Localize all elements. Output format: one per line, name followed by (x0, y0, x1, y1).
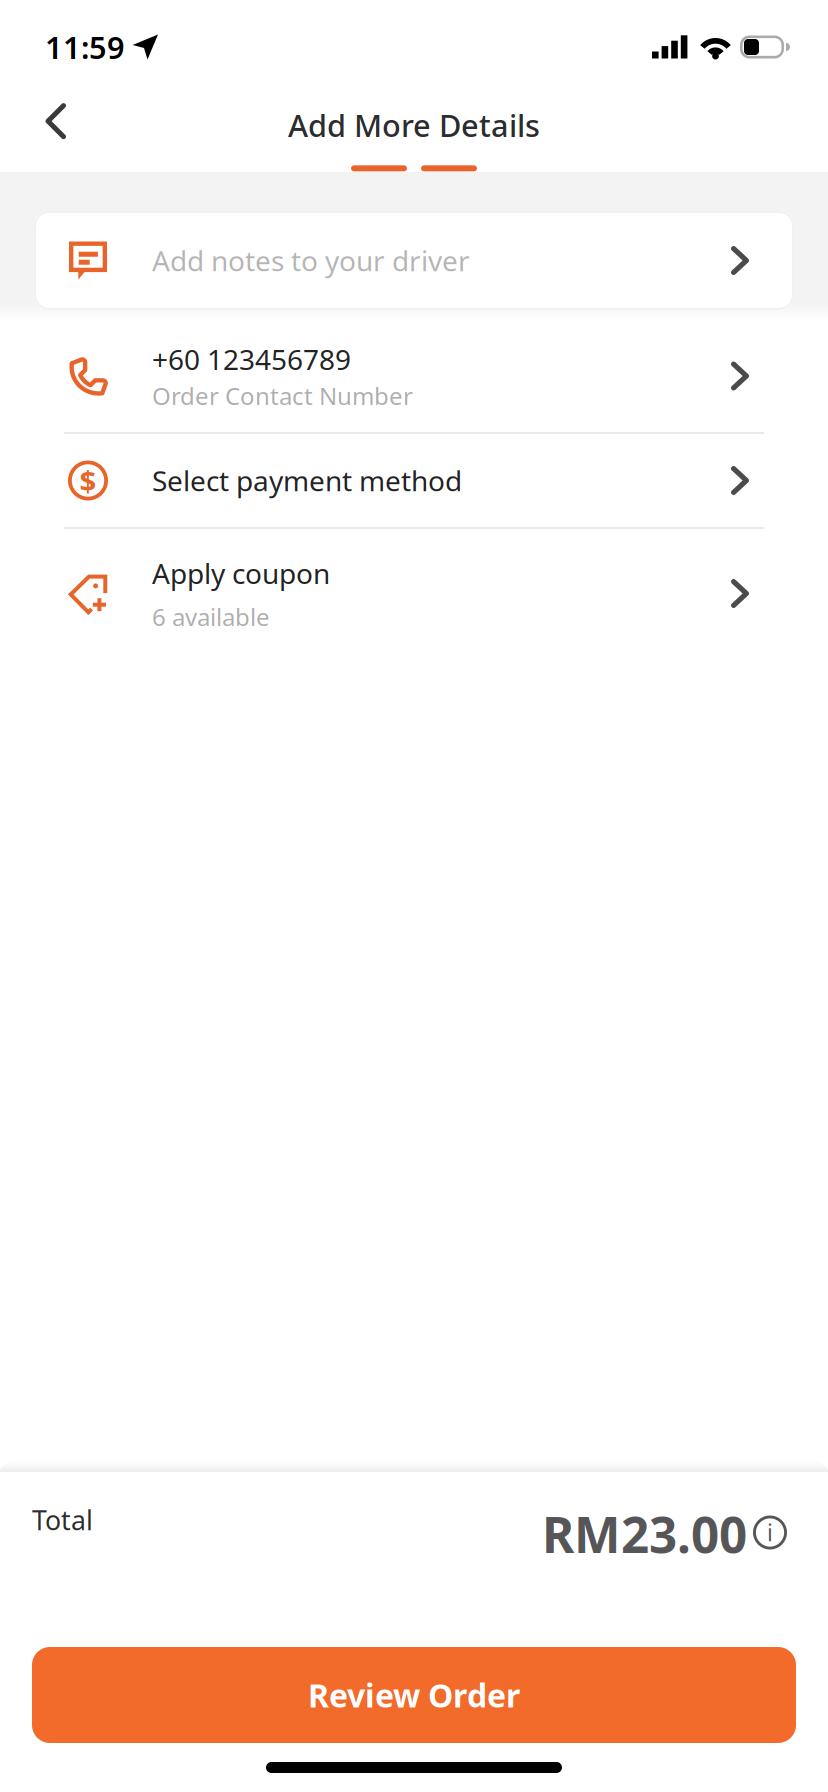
button[interactable]: Back (0, 87, 93, 164)
button[interactable]: Apply coupon (0, 529, 828, 658)
button[interactable]: +60 123456789 (0, 320, 828, 432)
staticText: $ (79, 461, 96, 500)
staticText: Order Contact Number (152, 380, 413, 412)
staticText: 11:59 (45, 27, 125, 67)
staticText: 6 available (152, 601, 270, 633)
staticText: RM23.00 (542, 1501, 747, 1566)
staticText: Total (32, 1502, 93, 1537)
button[interactable]: Total breakdown (747, 1507, 787, 1566)
button[interactable]: $ (0, 434, 828, 527)
staticText: Select payment method (152, 462, 462, 499)
staticText: i (767, 1517, 773, 1548)
staticText: Add notes to your driver (152, 242, 470, 279)
staticText: Review Order (308, 1674, 520, 1716)
button[interactable]: Add notes to your driver (34, 211, 794, 310)
staticText: Apply coupon (152, 554, 330, 592)
staticText: Add More Details (288, 105, 540, 145)
staticText: +60 123456789 (152, 340, 351, 378)
button[interactable]: Review Order (32, 1647, 796, 1743)
